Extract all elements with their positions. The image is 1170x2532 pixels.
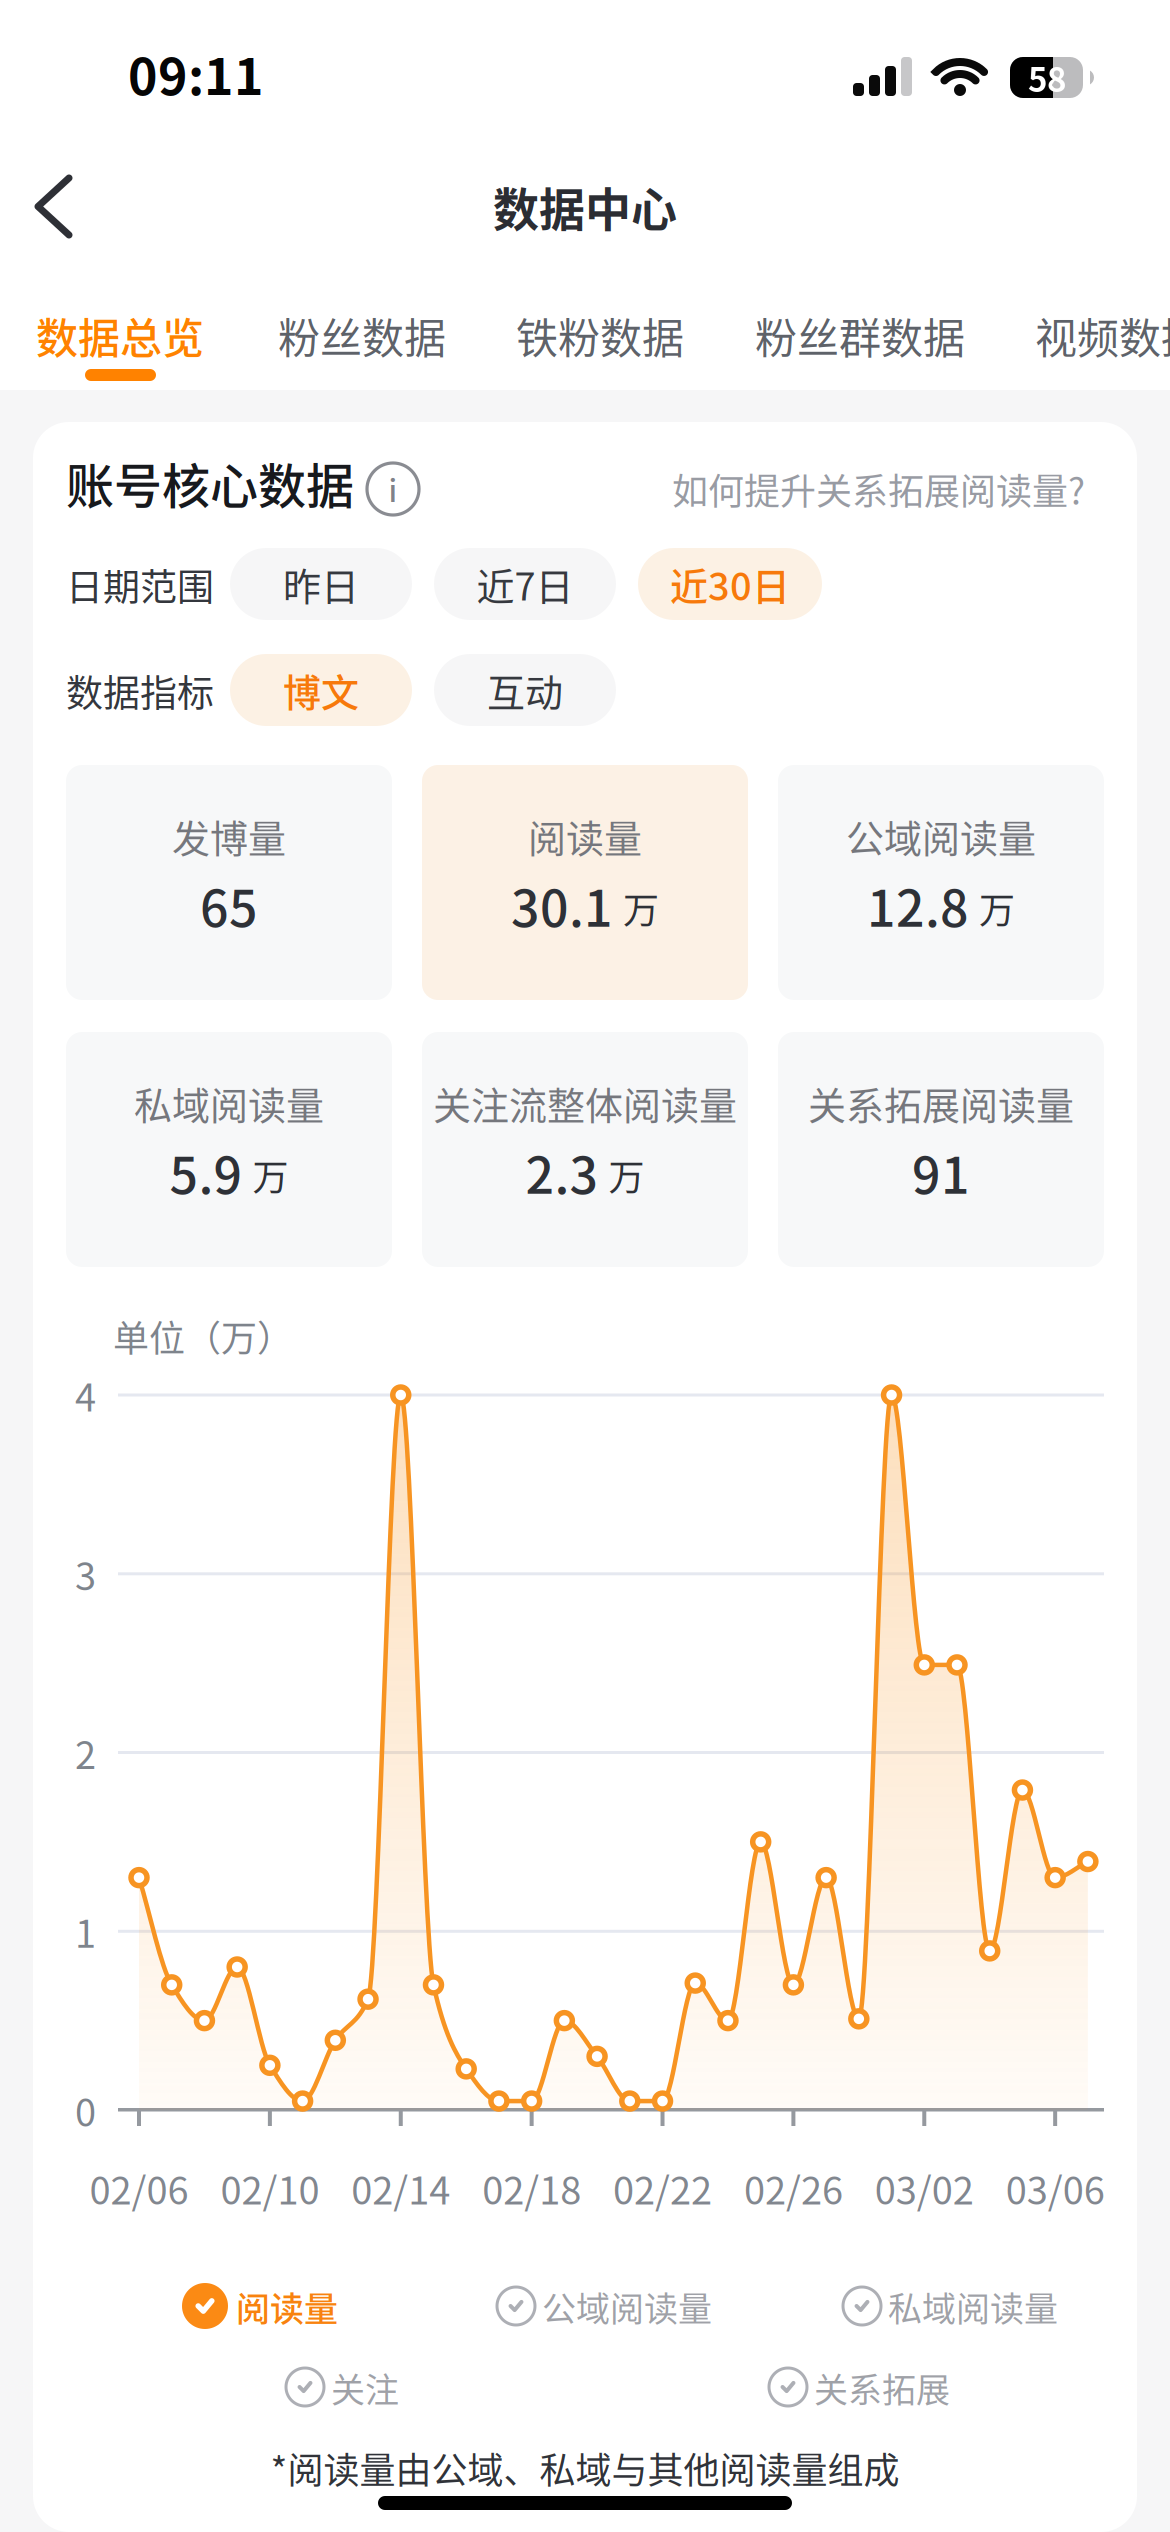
staticText: 关注 (331, 2363, 399, 2412)
staticText: 发博量 (172, 808, 286, 863)
button[interactable]: 近30日 (638, 548, 822, 620)
staticText: 万 (979, 882, 1015, 934)
staticText: 5.9 (169, 1136, 242, 1208)
button[interactable]: 发博量 (66, 765, 392, 1000)
staticText: 铁粉数据 (516, 305, 684, 366)
button[interactable]: 公域阅读量 (497, 2287, 1170, 2532)
staticText: 万 (252, 1149, 288, 1201)
staticText: 0 (75, 2082, 96, 2137)
staticText: 数据中心 (493, 173, 677, 240)
button[interactable] (6, 152, 116, 262)
staticText: 粉丝群数据 (755, 305, 965, 366)
button[interactable]: 昨日 (230, 548, 412, 620)
staticText: 阅读量 (528, 808, 642, 863)
button[interactable]: 如何提升关系拓展阅读量? (655, 459, 1085, 519)
staticText: 私域阅读量 (888, 2282, 1058, 2331)
button[interactable]: 关系拓展阅读量 (778, 1032, 1104, 1267)
staticText: 2 (75, 1725, 96, 1780)
staticText: 02/06 (89, 2160, 188, 2215)
staticText: 万 (623, 882, 659, 934)
staticText: 单位（万） (113, 1310, 293, 1362)
staticText: 数据总览 (36, 305, 204, 366)
button[interactable]: 私域阅读量 (66, 1032, 392, 1267)
staticText: 私域阅读量 (134, 1075, 324, 1130)
staticText: 02/10 (220, 2160, 319, 2215)
staticText: 关系拓展 (814, 2363, 950, 2412)
staticText: 3 (75, 1546, 96, 1601)
staticText: 近7日 (476, 556, 573, 611)
button[interactable]: 私域阅读量 (843, 2287, 1170, 2532)
staticText: 03/06 (1006, 2160, 1105, 2215)
staticText: 91 (912, 1136, 970, 1208)
staticText: 如何提升关系拓展阅读量? (672, 463, 1085, 515)
staticText: 粉丝数据 (278, 305, 446, 366)
staticText: 公域阅读量 (542, 2282, 712, 2331)
button[interactable]: 公域阅读量 (778, 765, 1104, 1000)
staticText: 02/22 (613, 2160, 712, 2215)
staticText: *阅读量由公域、私域与其他阅读量组成 (270, 2442, 899, 2494)
staticText: 近30日 (670, 556, 790, 611)
staticText: 账号核心数据 (66, 448, 354, 517)
staticText: 互动 (487, 662, 563, 717)
staticText: 02/26 (744, 2160, 843, 2215)
staticText: 02/14 (351, 2160, 450, 2215)
button[interactable]: 阅读量 (182, 2283, 1170, 2532)
button[interactable]: 关注流整体阅读量 (422, 1032, 748, 1267)
staticText: 视频数据 (1035, 305, 1170, 366)
button[interactable]: 粉丝群数据 (755, 305, 965, 366)
button[interactable]: 铁粉数据 (516, 305, 684, 366)
staticText: 关注流整体阅读量 (433, 1075, 737, 1130)
staticText: 30.1 (511, 869, 613, 941)
button[interactable]: i (367, 463, 419, 515)
button[interactable]: 博文 (230, 654, 412, 726)
staticText: 日期范围 (66, 558, 214, 612)
button[interactable]: 阅读量 (422, 765, 748, 1000)
staticText: 博文 (283, 662, 359, 717)
staticText: 万 (608, 1149, 644, 1201)
button[interactable]: 互动 (434, 654, 616, 726)
button[interactable]: 视频数据 (1035, 305, 1170, 366)
staticText: 65 (200, 869, 258, 941)
staticText: 关系拓展阅读量 (808, 1075, 1074, 1130)
button[interactable]: 近7日 (434, 548, 616, 620)
staticText: 昨日 (283, 556, 359, 611)
staticText: 阅读量 (236, 2282, 338, 2331)
button[interactable]: 粉丝数据 (278, 305, 446, 366)
staticText: 58 (1028, 54, 1066, 101)
staticText: 12.8 (867, 869, 969, 941)
staticText: 09:11 (128, 37, 264, 109)
button[interactable]: 关注 (286, 2368, 1170, 2532)
staticText: 公域阅读量 (846, 808, 1036, 863)
staticText: 03/02 (875, 2160, 974, 2215)
staticText: 4 (75, 1367, 96, 1422)
staticText: 数据指标 (66, 664, 214, 718)
staticText: 02/18 (482, 2160, 581, 2215)
button[interactable]: 关系拓展 (769, 2368, 1170, 2532)
button[interactable]: 数据总览 (36, 305, 204, 366)
staticText: i (388, 467, 397, 511)
staticText: 2.3 (525, 1136, 598, 1208)
staticText: 1 (75, 1904, 96, 1959)
